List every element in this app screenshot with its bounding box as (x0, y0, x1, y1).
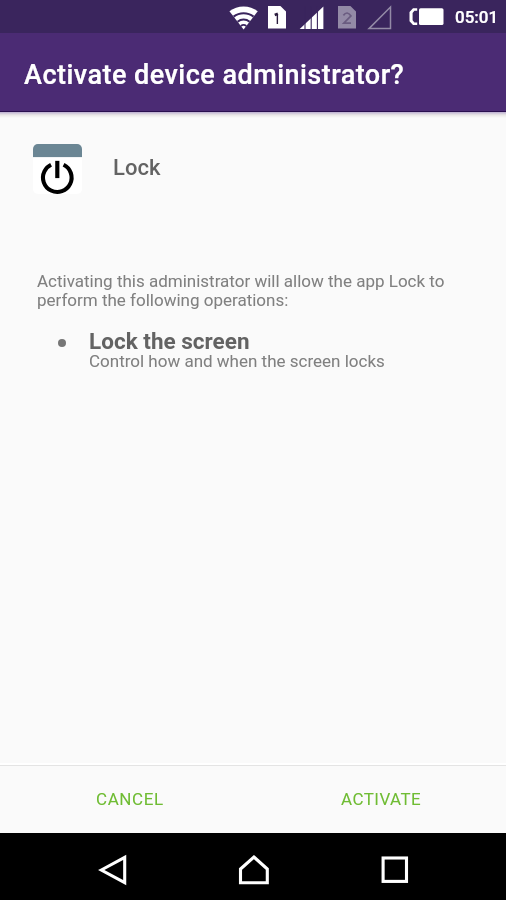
staticText: CANCEL (96, 789, 164, 809)
staticText: Activating this administrator will allow… (37, 271, 451, 310)
staticText: Lock the screen (89, 328, 250, 354)
button[interactable]: Recent apps (365, 835, 423, 893)
button[interactable]: CANCEL (0, 765, 253, 832)
staticText: 05:01 (455, 7, 499, 27)
staticText: Activate device administrator? (24, 59, 405, 91)
button[interactable]: ACTIVATE (253, 765, 506, 832)
button[interactable]: Back (84, 835, 142, 893)
button[interactable]: Home (225, 835, 283, 893)
staticText: Control how and when the screen locks (89, 351, 385, 371)
staticText: ACTIVATE (341, 789, 422, 809)
staticText: Lock (113, 155, 161, 181)
